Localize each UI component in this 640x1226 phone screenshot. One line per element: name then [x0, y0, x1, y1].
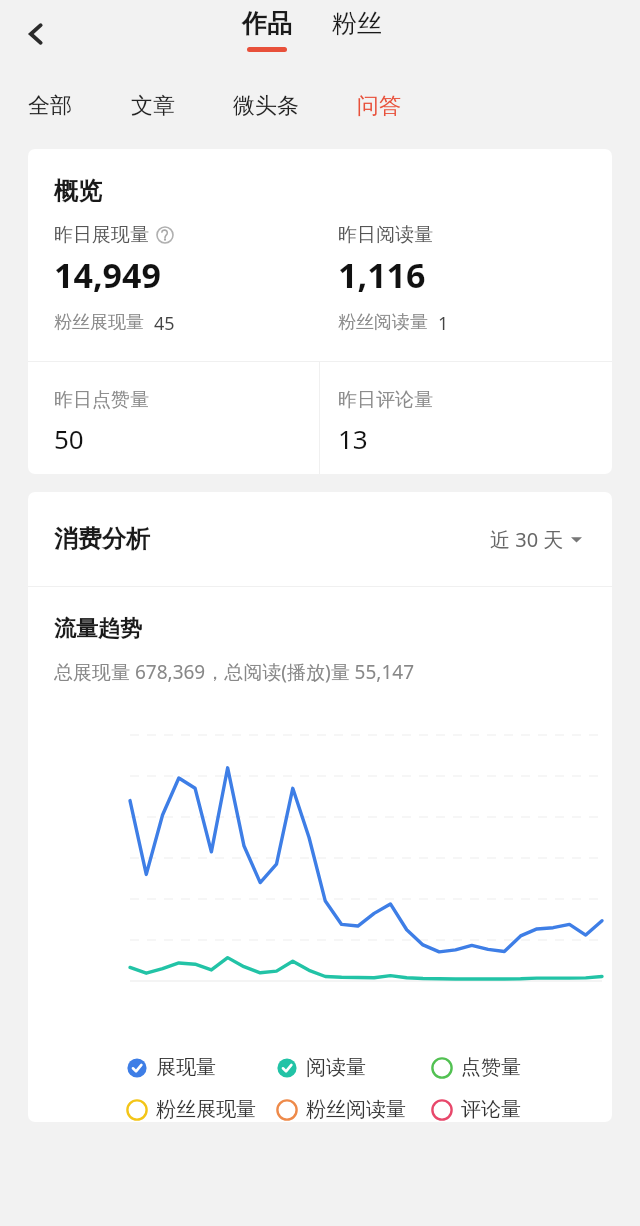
button[interactable]: 全部: [28, 92, 72, 120]
staticText: 昨日展现量: [54, 223, 149, 247]
button[interactable]: 微头条: [233, 92, 299, 120]
staticText: 全部: [28, 92, 72, 120]
staticText: 流量趋势: [54, 615, 142, 643]
staticText: 阅读量: [306, 1055, 366, 1080]
button[interactable]: Back: [14, 12, 58, 56]
staticText: 14,949: [54, 252, 161, 298]
staticText: 粉丝: [332, 8, 382, 39]
button[interactable]: 粉丝: [328, 8, 386, 39]
staticText: 粉丝展现量: [156, 1097, 256, 1122]
staticText: 昨日点赞量: [54, 388, 149, 412]
button[interactable]: 评论量: [431, 1097, 571, 1122]
staticText: 作品: [242, 8, 292, 39]
staticText: 消费分析: [54, 524, 150, 554]
staticText: 问答: [357, 92, 401, 120]
staticText: 粉丝展现量: [54, 311, 144, 334]
button[interactable]: 展现量: [126, 1055, 276, 1080]
staticText: 13: [338, 421, 368, 456]
button[interactable]: 阅读量: [276, 1055, 431, 1080]
button[interactable]: 作品: [238, 8, 296, 52]
staticText: 粉丝阅读量: [306, 1097, 406, 1122]
button[interactable]: 文章: [131, 92, 175, 120]
button[interactable]: 问答: [357, 92, 401, 120]
staticText: 昨日评论量: [338, 388, 433, 412]
staticText: 点赞量: [461, 1055, 521, 1080]
staticText: 粉丝阅读量: [338, 311, 428, 334]
staticText: 45: [154, 311, 175, 336]
staticText: 1,116: [338, 252, 426, 298]
staticText: 微头条: [233, 92, 299, 120]
button[interactable]: 点赞量: [431, 1055, 571, 1080]
staticText: 1: [438, 311, 449, 336]
staticText: 展现量: [156, 1055, 216, 1080]
button[interactable]: 粉丝阅读量: [276, 1097, 431, 1122]
staticText: 50: [54, 421, 84, 456]
staticText: 近 30 天: [490, 526, 564, 553]
button[interactable]: 近 30 天: [486, 522, 586, 557]
staticText: 文章: [131, 92, 175, 120]
staticText: 概览: [54, 176, 102, 206]
staticText: 昨日阅读量: [338, 223, 433, 247]
button[interactable]: 粉丝展现量: [126, 1097, 276, 1122]
staticText: 总展现量 678,369，总阅读(播放)量 55,147: [54, 659, 415, 685]
staticText: 评论量: [461, 1097, 521, 1122]
